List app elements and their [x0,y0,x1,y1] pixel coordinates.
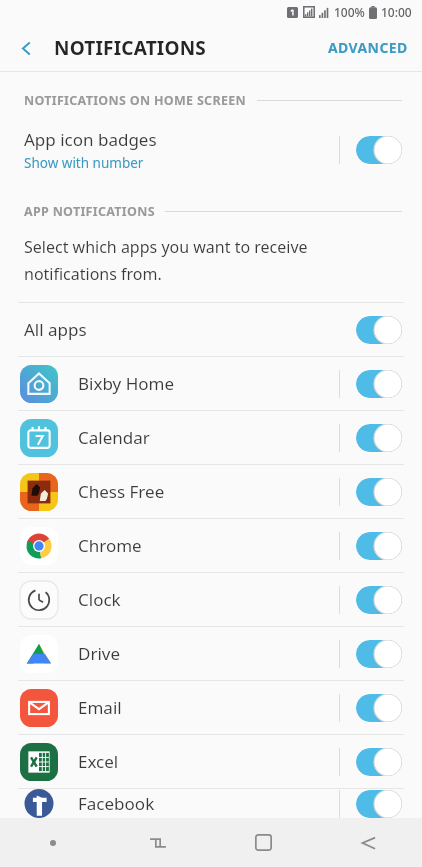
staticText: 10:00 [381,4,412,20]
button[interactable]: Calendar [0,411,422,464]
button[interactable]: All apps [0,303,422,356]
button[interactable]: Email [0,681,422,734]
staticText: Email [78,696,339,719]
button[interactable]: Toggle on [356,424,402,452]
button[interactable]: Toggle on [356,586,402,614]
button[interactable]: Back [316,818,422,867]
staticText: App icon badges [24,128,157,151]
button[interactable]: Chess Free [0,465,422,518]
staticText: Calendar [78,426,339,449]
button[interactable]: Excel [0,735,422,788]
button[interactable]: Home [210,818,316,867]
button[interactable]: ADVANCED [314,30,422,65]
staticText: All apps [24,318,356,341]
staticText: Chess Free [78,480,339,503]
button[interactable]: Chrome [0,519,422,572]
staticText: Bixby Home [78,372,339,395]
other: Indicator [0,818,105,867]
button[interactable]: Toggle on [356,136,402,164]
button[interactable]: App icon badges [0,119,422,181]
button[interactable]: Toggle on [356,748,402,776]
staticText: APP NOTIFICATIONS [24,203,155,220]
staticText: Drive [78,642,339,665]
staticText: ADVANCED [328,38,408,57]
button[interactable]: Toggle on [356,478,402,506]
staticText: Select which apps you want to receive [24,236,308,258]
button[interactable]: Toggle on [356,316,402,344]
button[interactable]: Toggle on [356,370,402,398]
staticText: Show with number [24,154,144,172]
staticText: 100% [334,4,365,20]
button[interactable]: Clock [0,573,422,626]
button[interactable]: Back [8,30,44,66]
button[interactable]: Toggle on [356,640,402,668]
staticText: NOTIFICATIONS [54,35,206,61]
button[interactable]: Recents [105,818,210,867]
staticText: Excel [78,750,339,773]
button[interactable]: Facebook [0,789,422,818]
staticText: NOTIFICATIONS ON HOME SCREEN [24,92,247,109]
button[interactable]: Drive [0,627,422,680]
staticText: Clock [78,588,339,611]
button[interactable]: Toggle on [356,790,402,818]
button[interactable]: Toggle on [356,532,402,560]
staticText: Chrome [78,534,339,557]
staticText: Facebook [78,792,339,815]
staticText: notifications from. [24,263,162,285]
button[interactable]: Toggle on [356,694,402,722]
button[interactable]: Bixby Home [0,357,422,410]
